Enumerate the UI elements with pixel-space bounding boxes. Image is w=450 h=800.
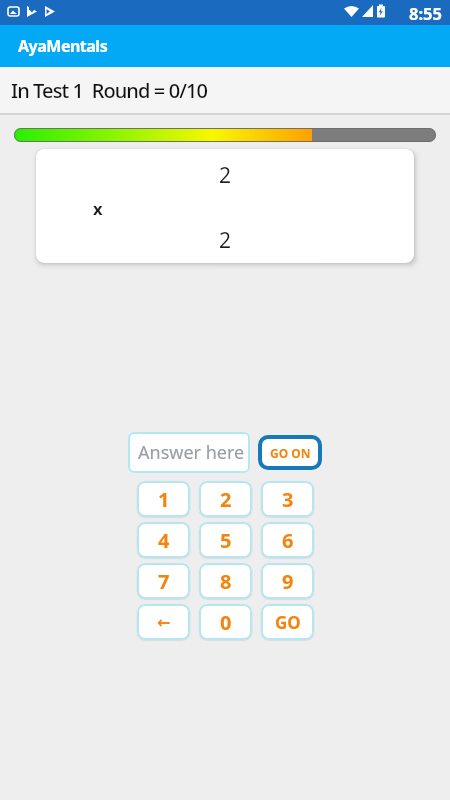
staticText: In Test 1 Round = 0/10 xyxy=(11,77,208,104)
button[interactable]: AyaMentals xyxy=(0,25,450,67)
staticText: 1 xyxy=(158,486,170,513)
button[interactable]: 7 xyxy=(137,563,190,599)
staticText: 9 xyxy=(282,568,294,595)
button[interactable]: 9 xyxy=(261,563,314,599)
button[interactable]: GO ON xyxy=(258,435,322,470)
staticText: 0 xyxy=(220,609,232,636)
button[interactable]: ← xyxy=(137,604,190,640)
staticText: x xyxy=(93,197,103,219)
button[interactable]: Answer here xyxy=(128,432,250,473)
button[interactable]: 6 xyxy=(261,522,314,558)
staticText: AyaMentals xyxy=(18,35,108,57)
staticText: 2 xyxy=(219,161,232,190)
button[interactable]: 0 xyxy=(199,604,252,640)
staticText: 6 xyxy=(282,527,294,554)
staticText: 3 xyxy=(282,486,294,513)
staticText: 2 xyxy=(220,486,232,513)
button[interactable]: 8 xyxy=(199,563,252,599)
staticText: Answer here xyxy=(138,440,245,465)
button[interactable]: 2 xyxy=(199,481,252,517)
staticText: 8 xyxy=(220,568,232,595)
staticText: 5 xyxy=(220,527,232,554)
staticText: ← xyxy=(157,613,171,632)
staticText: 7 xyxy=(158,568,170,595)
button[interactable]: 1 xyxy=(137,481,190,517)
button[interactable]: GO xyxy=(261,604,314,640)
staticText: GO xyxy=(275,611,301,634)
button[interactable]: 5 xyxy=(199,522,252,558)
staticText: 2 xyxy=(219,226,232,255)
button[interactable]: 4 xyxy=(137,522,190,558)
staticText: GO ON xyxy=(270,445,311,461)
button[interactable]: 3 xyxy=(261,481,314,517)
staticText: 8:55 xyxy=(409,2,442,24)
staticText: 4 xyxy=(158,527,170,554)
